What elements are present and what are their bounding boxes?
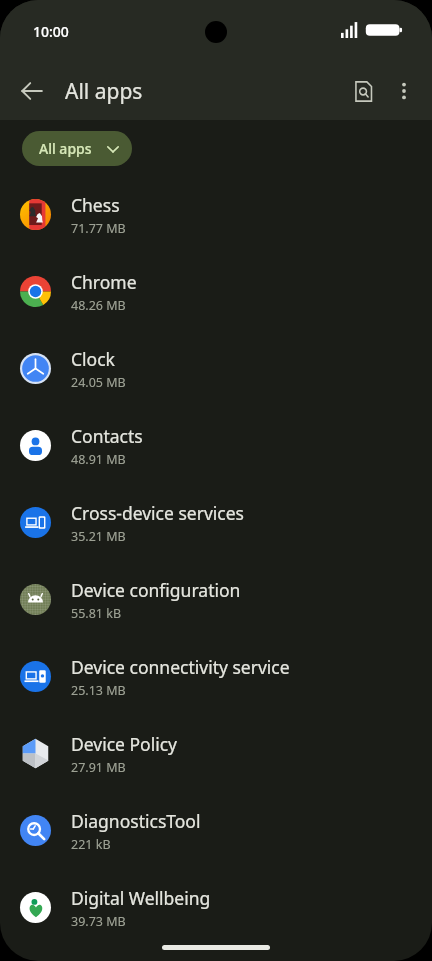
staticText: 24.05 MB — [71, 374, 126, 391]
staticText: 25.13 MB — [71, 682, 126, 699]
button[interactable]: Device Policy — [0, 715, 432, 792]
staticText: Clock — [71, 347, 115, 371]
staticText: Device Policy — [71, 732, 178, 756]
staticText: Chrome — [71, 270, 137, 294]
staticText: All apps — [39, 139, 92, 158]
staticText: 27.91 MB — [71, 759, 126, 776]
button[interactable]: DiagnosticsTool — [0, 792, 432, 869]
staticText: 48.26 MB — [71, 297, 126, 314]
staticText: Device configuration — [71, 578, 241, 602]
button[interactable]: Clock — [0, 330, 432, 407]
button[interactable]: Chrome — [0, 253, 432, 330]
staticText: DiagnosticsTool — [71, 809, 201, 833]
staticText: 39.73 MB — [71, 913, 126, 930]
button[interactable]: Back — [8, 67, 56, 115]
staticText: Contacts — [71, 424, 143, 448]
button[interactable]: Device connectivity service — [0, 638, 432, 715]
staticText: 221 kB — [71, 836, 111, 853]
button[interactable]: More options — [382, 69, 426, 113]
staticText: Device connectivity service — [71, 655, 290, 679]
button[interactable]: Cross-device services — [0, 484, 432, 561]
staticText: Cross-device services — [71, 501, 244, 525]
staticText: All apps — [65, 77, 143, 106]
staticText: 35.21 MB — [71, 528, 126, 545]
staticText: 48.91 MB — [71, 451, 126, 468]
button[interactable]: Search apps — [341, 69, 385, 113]
staticText: Chess — [71, 193, 120, 217]
staticText: Digital Wellbeing — [71, 886, 211, 910]
staticText: 71.77 MB — [71, 220, 126, 237]
staticText: 55.81 kB — [71, 605, 122, 622]
button[interactable]: Device configuration — [0, 561, 432, 638]
staticText: 10:00 — [33, 22, 69, 41]
button[interactable]: Contacts — [0, 407, 432, 484]
button[interactable]: Digital Wellbeing — [0, 869, 432, 946]
button[interactable]: All apps — [22, 131, 132, 166]
button[interactable]: Chess — [0, 176, 432, 253]
